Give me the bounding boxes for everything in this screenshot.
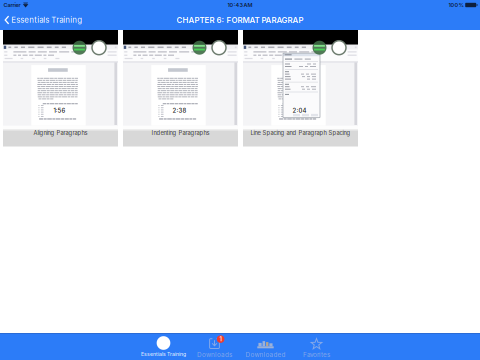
staticText: 2:04 [292, 107, 306, 114]
staticText: 1:56 [53, 107, 65, 114]
staticText: Favorites [303, 351, 330, 359]
button[interactable]: Download video [212, 41, 226, 55]
staticText: Carrier [3, 2, 20, 8]
staticText: Line Spacing and Paragraph Spacing [250, 129, 350, 136]
button[interactable]: Add to playlist [72, 41, 86, 55]
button[interactable]: Add to playlist [312, 41, 326, 55]
staticText: Essentials Training [11, 15, 82, 25]
staticText: Downloaded [245, 351, 285, 359]
button[interactable]: Downloaded [240, 334, 291, 360]
staticText: Essentials Training [141, 351, 186, 357]
staticText: 100% [448, 2, 463, 8]
staticText: 10:43 AM [227, 2, 252, 8]
staticText: Aligning Paragraphs [33, 129, 87, 136]
button[interactable]: Essentials Training [138, 334, 189, 360]
button[interactable]: Download video [92, 41, 106, 55]
button[interactable]: 1:56 [3, 30, 118, 146]
staticText: CHAPTER 6: FORMAT PARAGRAP [176, 15, 303, 25]
button[interactable]: Favorites [291, 334, 342, 360]
button[interactable]: Add to playlist [192, 41, 206, 55]
staticText: 2:38 [172, 107, 186, 114]
button[interactable]: Essentials Training [0, 10, 88, 30]
button[interactable]: 2:38 [123, 30, 238, 146]
staticText: Downloads [197, 351, 232, 359]
staticText: Indenting Paragraphs [151, 129, 209, 136]
staticText: 1 [220, 336, 222, 343]
button[interactable]: 2:04 [243, 30, 358, 146]
button[interactable]: 1 [189, 334, 240, 360]
button[interactable]: Download video [332, 41, 346, 55]
